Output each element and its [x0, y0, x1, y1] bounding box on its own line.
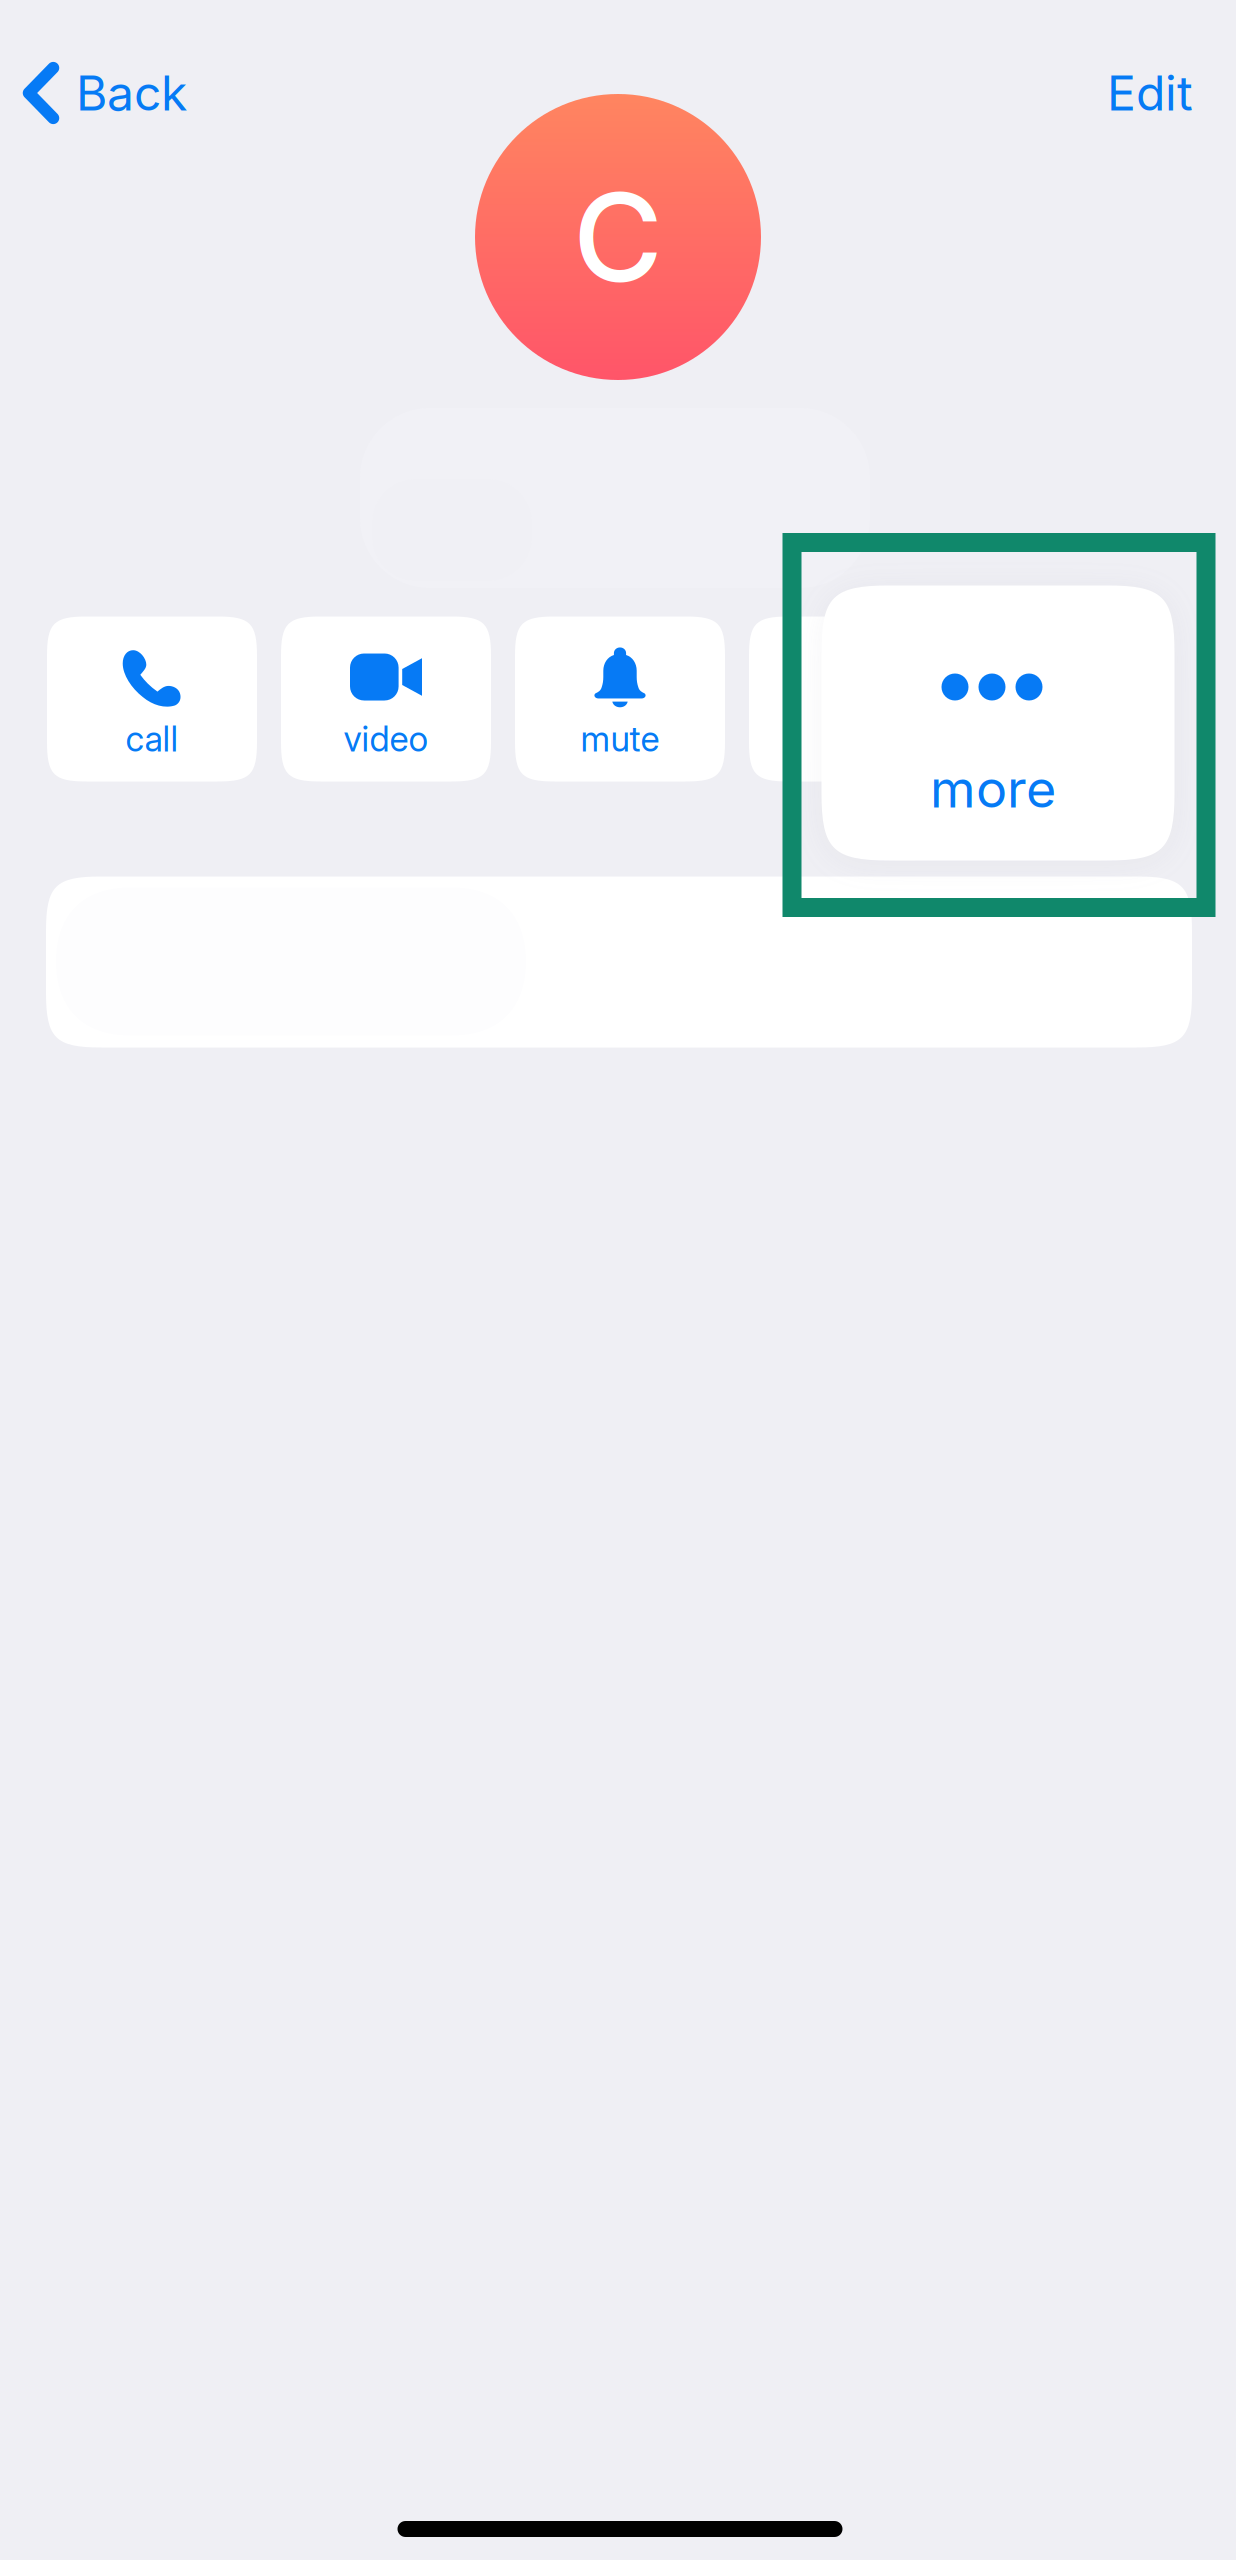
button[interactable]: mute	[515, 616, 725, 781]
staticText: video	[343, 718, 428, 760]
staticText: more	[930, 757, 1056, 820]
button[interactable]: more	[821, 585, 1174, 860]
staticText: call	[125, 718, 178, 760]
button[interactable]: mail	[749, 616, 959, 781]
staticText: Back	[76, 64, 187, 122]
button[interactable]: video	[281, 616, 491, 781]
staticText: mute	[580, 718, 659, 760]
button[interactable]: Edit	[1089, 48, 1211, 138]
staticText: Edit	[1107, 64, 1193, 122]
button[interactable]: Back	[11, 46, 199, 140]
button[interactable]: call	[47, 616, 257, 781]
staticText: C	[573, 163, 663, 311]
